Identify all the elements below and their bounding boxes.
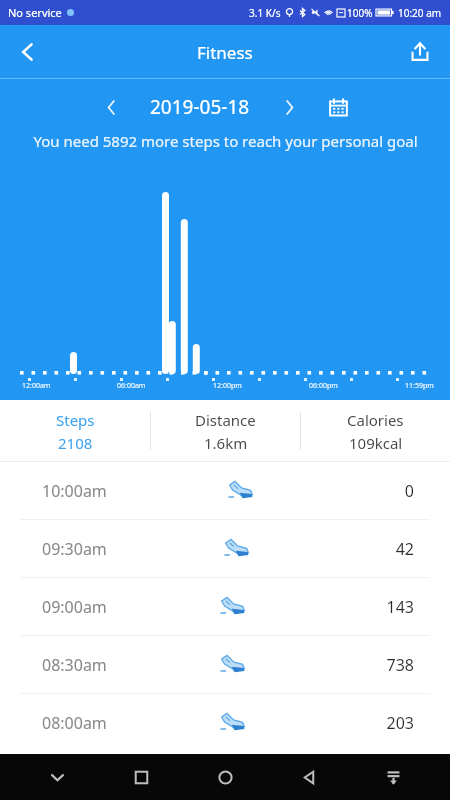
staticText: 06:00pm bbox=[309, 381, 338, 391]
staticText: 738 bbox=[386, 654, 414, 676]
staticText: 100% bbox=[347, 6, 373, 20]
staticText: 12:00pm bbox=[213, 381, 242, 391]
staticText: Calories bbox=[347, 410, 404, 430]
button[interactable]: Pick date bbox=[320, 89, 356, 125]
button[interactable]: Home bbox=[198, 754, 252, 800]
button[interactable]: Distance bbox=[151, 400, 300, 462]
button[interactable]: Hide navigation bar bbox=[366, 754, 420, 800]
button[interactable]: 09:30am bbox=[0, 520, 450, 577]
staticText: 1.6km bbox=[204, 433, 248, 453]
staticText: 12:00am bbox=[22, 381, 51, 391]
staticText: 42 bbox=[395, 538, 414, 560]
staticText: 109kcal bbox=[349, 433, 403, 453]
button[interactable]: Recent apps bbox=[114, 754, 168, 800]
button[interactable]: Share bbox=[398, 30, 442, 74]
staticText: 143 bbox=[386, 596, 414, 618]
staticText: 0 bbox=[404, 480, 414, 502]
staticText: 11:59pm bbox=[405, 381, 434, 391]
staticText: 08:30am bbox=[42, 654, 107, 676]
button[interactable]: Previous day bbox=[94, 90, 128, 124]
staticText: No service bbox=[8, 5, 62, 20]
button[interactable]: Steps bbox=[0, 400, 150, 462]
button[interactable]: 09:00am bbox=[0, 578, 450, 635]
button[interactable]: 10:00am bbox=[0, 462, 450, 519]
button[interactable]: Back bbox=[282, 754, 336, 800]
staticText: Steps bbox=[56, 410, 95, 430]
button[interactable]: Calories bbox=[301, 400, 450, 462]
button[interactable]: 08:30am bbox=[0, 636, 450, 693]
staticText: 09:00am bbox=[42, 596, 107, 618]
button[interactable]: Back bbox=[6, 30, 50, 74]
button[interactable]: Hide keyboard bbox=[30, 754, 84, 800]
staticText: 203 bbox=[386, 712, 414, 734]
staticText: 2108 bbox=[58, 433, 93, 453]
staticText: 10:20 am bbox=[398, 6, 442, 20]
staticText: Distance bbox=[195, 410, 256, 430]
staticText: Fitness bbox=[197, 41, 253, 64]
staticText: 2019-05-18 bbox=[150, 94, 250, 120]
staticText: You need 5892 more steps to reach your p… bbox=[33, 131, 418, 151]
button[interactable]: 08:00am bbox=[0, 694, 450, 751]
staticText: 09:30am bbox=[42, 538, 107, 560]
staticText: 06:00am bbox=[117, 381, 146, 391]
staticText: 08:00am bbox=[42, 712, 107, 734]
staticText: 3.1 K/s bbox=[249, 6, 281, 20]
button[interactable]: Next day bbox=[272, 90, 306, 124]
staticText: 10:00am bbox=[42, 480, 107, 502]
